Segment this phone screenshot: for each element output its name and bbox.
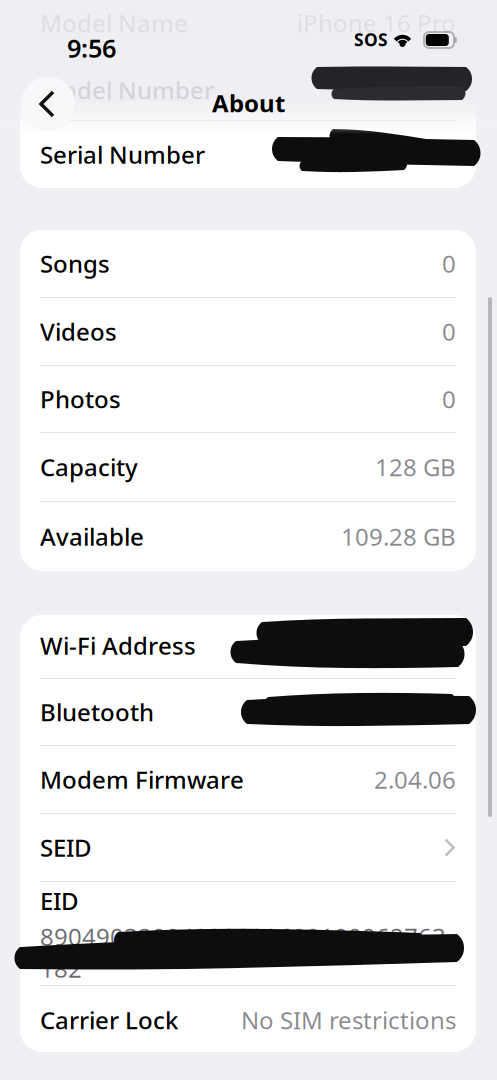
staticText: 0 bbox=[442, 383, 456, 415]
staticText: Modem Firmware bbox=[40, 764, 244, 795]
staticText: iPhone 16 Pro bbox=[297, 7, 456, 39]
staticText: Wi-Fi Address bbox=[40, 630, 196, 661]
button[interactable]: Videos bbox=[20, 298, 476, 365]
staticText: 0 bbox=[442, 248, 456, 279]
staticText: 89049032004008882600100962763182 bbox=[40, 921, 446, 984]
staticText: EID bbox=[40, 885, 79, 917]
staticText: Model Name bbox=[40, 7, 188, 39]
staticText: 109.28 GB bbox=[341, 521, 456, 552]
button[interactable]: Wi-Fi Address bbox=[20, 613, 476, 678]
button[interactable]: Capacity bbox=[20, 433, 476, 501]
button[interactable]: Serial Number bbox=[20, 121, 476, 188]
staticText: 0 bbox=[442, 316, 456, 347]
staticText: Serial Number bbox=[40, 139, 205, 170]
staticText: 9:56 bbox=[67, 31, 116, 65]
button[interactable]: Carrier Lock bbox=[20, 986, 476, 1054]
staticText: SEID bbox=[40, 832, 92, 863]
staticText: About bbox=[212, 87, 285, 119]
staticText: Carrier Lock bbox=[40, 1004, 178, 1036]
button[interactable]: Bluetooth bbox=[20, 679, 476, 745]
button[interactable]: Model Name bbox=[20, 0, 476, 52]
button[interactable]: Model Number bbox=[20, 53, 476, 120]
staticText: Capacity bbox=[40, 451, 138, 483]
staticText: 2.04.06 bbox=[374, 764, 456, 795]
button[interactable]: Songs bbox=[20, 230, 476, 297]
staticText: Photos bbox=[40, 383, 121, 415]
button[interactable]: Back bbox=[21, 77, 75, 131]
button[interactable]: Available bbox=[20, 502, 476, 571]
staticText: Model Number bbox=[40, 74, 214, 106]
staticText: Songs bbox=[40, 248, 110, 279]
button[interactable]: Modem Firmware bbox=[20, 746, 476, 813]
staticText: iPhone 16 Pro bbox=[297, 3, 456, 34]
button[interactable]: SEID bbox=[20, 814, 476, 881]
button[interactable]: Photos bbox=[20, 366, 476, 432]
staticText: No SIM restrictions bbox=[241, 1004, 456, 1036]
staticText: Videos bbox=[40, 316, 117, 347]
staticText: SOS bbox=[354, 28, 388, 51]
staticText: 128 GB bbox=[375, 451, 456, 483]
button[interactable]: EID bbox=[20, 882, 476, 985]
staticText: Model Number bbox=[40, 71, 214, 102]
staticText: Model Name bbox=[40, 3, 188, 34]
staticText: Available bbox=[40, 521, 144, 552]
staticText: Bluetooth bbox=[40, 696, 154, 728]
